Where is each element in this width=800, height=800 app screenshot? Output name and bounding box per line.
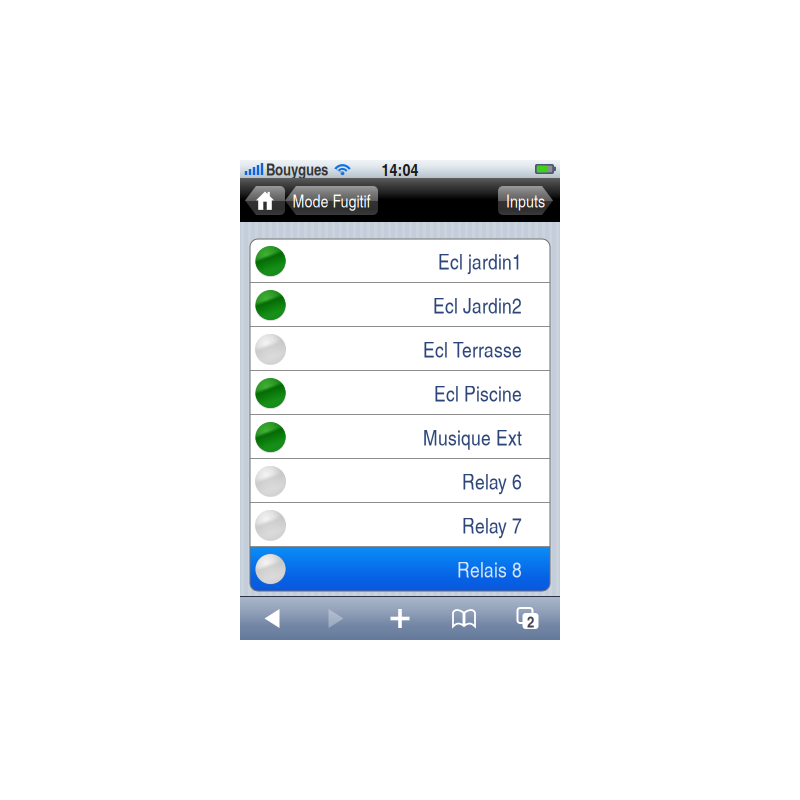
button[interactable]: Bookmarks	[432, 597, 496, 640]
button[interactable]: Relay 7	[250, 503, 550, 547]
staticText: Ecl Jardin2	[433, 290, 522, 320]
staticText: 2	[527, 610, 534, 632]
button[interactable]: Mode Fugitif	[285, 186, 378, 215]
button[interactable]: Ecl jardin1	[250, 239, 550, 283]
button[interactable]: Add bookmark	[368, 597, 432, 640]
staticText: Musique Ext	[423, 422, 522, 452]
button[interactable]: Home	[245, 186, 285, 215]
button[interactable]: Relais 8	[250, 547, 550, 591]
staticText: Inputs	[506, 189, 545, 212]
button[interactable]: Ecl Terrasse	[250, 327, 550, 371]
staticText: Ecl Terrasse	[423, 334, 522, 364]
button[interactable]: Ecl Piscine	[250, 371, 550, 415]
staticText: Relay 7	[462, 510, 522, 540]
button[interactable]: Inputs	[498, 186, 553, 215]
staticText: Ecl jardin1	[438, 246, 522, 276]
staticText: Relais 8	[457, 554, 522, 584]
staticText: Relay 6	[462, 466, 522, 496]
button[interactable]: Ecl Jardin2	[250, 283, 550, 327]
button[interactable]: Musique Ext	[250, 415, 550, 459]
button[interactable]: Forward	[304, 597, 368, 640]
staticText: Mode Fugitif	[292, 189, 370, 212]
button[interactable]: Back	[240, 597, 304, 640]
button[interactable]: Relay 6	[250, 459, 550, 503]
button[interactable]: Pages	[496, 597, 560, 640]
staticText: 14:04	[381, 157, 418, 181]
staticText: Ecl Piscine	[434, 378, 522, 408]
staticText: Bouygues	[266, 158, 328, 180]
